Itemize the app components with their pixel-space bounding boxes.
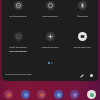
staticText: Точка доступа bbox=[73, 45, 91, 48]
staticText: Автоповорот bbox=[42, 14, 58, 17]
button[interactable]: Фонарик bbox=[66, 1, 98, 17]
button[interactable]: Edit tiles bbox=[77, 71, 86, 80]
staticText: Не беспокоить bbox=[9, 14, 27, 17]
button[interactable]: Автоповорот bbox=[34, 1, 66, 17]
button[interactable]: Моб. интернет bbox=[2, 32, 34, 52]
button[interactable]: Точка доступа bbox=[66, 32, 98, 48]
button[interactable]: Settings bbox=[87, 71, 96, 80]
button[interactable]: Режим полета bbox=[34, 32, 66, 48]
button[interactable]: Не беспокоить bbox=[2, 1, 34, 17]
staticText: Только экстренные вызовы bbox=[5, 73, 32, 76]
staticText: Нет SIM-карты bbox=[9, 49, 27, 52]
staticText: Фонарик bbox=[77, 14, 88, 17]
button[interactable]: Только экстренные вызовы bbox=[5, 73, 32, 76]
staticText: Моб. интернет bbox=[9, 45, 27, 48]
staticText: Режим полета bbox=[41, 45, 59, 48]
